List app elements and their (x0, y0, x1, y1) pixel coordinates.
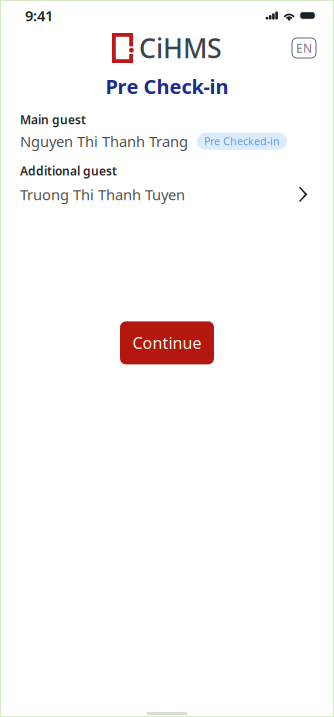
staticText: Pre Check-in (105, 73, 228, 100)
staticText: Continue (132, 332, 201, 353)
staticText: EN (296, 40, 312, 56)
staticText: Additional guest (20, 163, 117, 179)
staticText: CiHMS (139, 30, 222, 66)
button[interactable]: Language: English (292, 38, 316, 58)
button[interactable]: Truong Thi Thanh Tuyen (20, 185, 314, 204)
staticText: 9:41 (25, 6, 53, 25)
button[interactable]: Continue (120, 321, 214, 364)
staticText: Nguyen Thi Thanh Trang (20, 131, 188, 151)
staticText: Pre Checked-in (204, 134, 280, 148)
staticText: Main guest (20, 112, 86, 127)
staticText: Truong Thi Thanh Tuyen (20, 185, 185, 204)
